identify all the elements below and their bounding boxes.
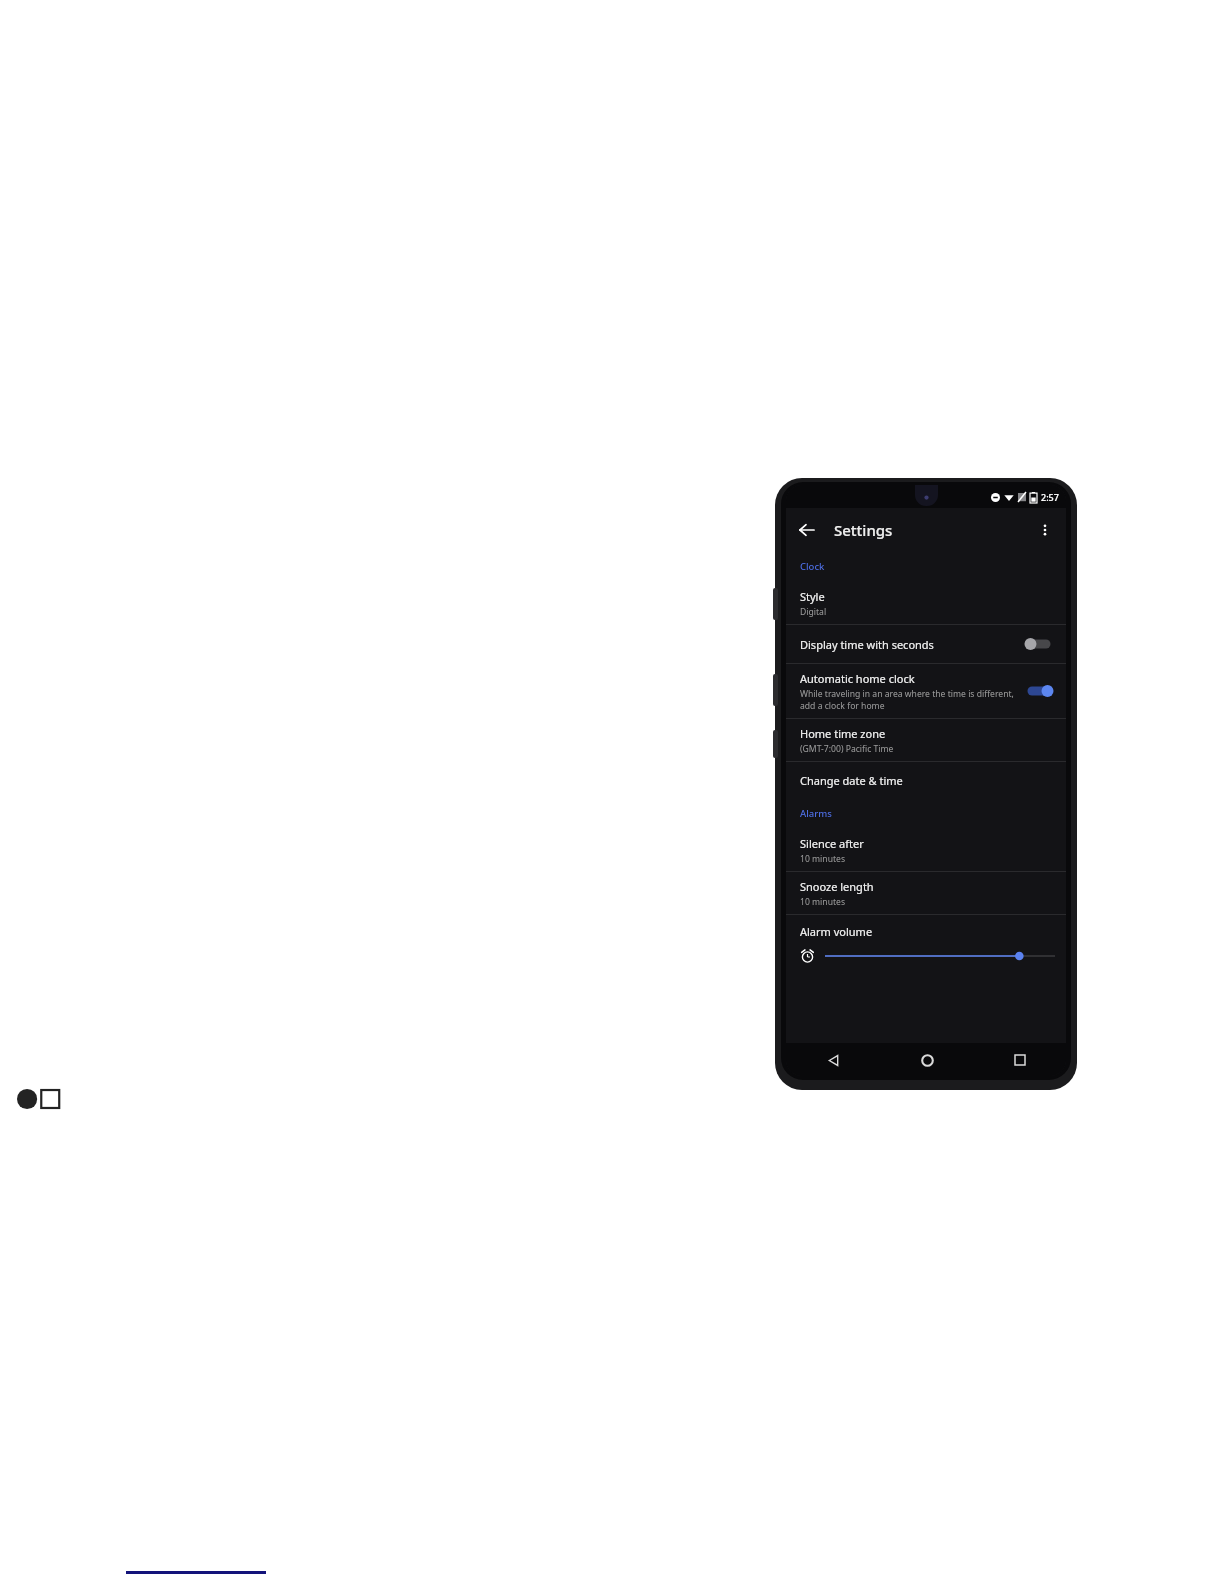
- staticText: Home time zone: [800, 726, 886, 741]
- staticText: (GMT-7:00) Pacific Time: [800, 743, 894, 755]
- button[interactable]: More options: [1029, 514, 1061, 546]
- button[interactable]: Home: [912, 1045, 942, 1075]
- button[interactable]: Disabled: [1023, 632, 1055, 656]
- staticText: Change date & time: [800, 773, 903, 788]
- staticText: Digital: [800, 606, 827, 618]
- staticText: Display time with seconds: [800, 637, 934, 652]
- button[interactable]: Home time zone: [786, 719, 1066, 761]
- staticText: Automatic home clock: [800, 671, 915, 686]
- button[interactable]: Alarm volume: [786, 915, 1066, 973]
- staticText: 10 minutes: [800, 896, 846, 908]
- button[interactable]: Style: [786, 582, 1066, 624]
- button[interactable]: Snooze length: [786, 872, 1066, 914]
- staticText: Alarm volume: [800, 924, 873, 939]
- staticText: Settings: [834, 520, 893, 540]
- button[interactable]: Alarm volume: [825, 949, 1055, 963]
- button[interactable]: Navigate up: [791, 514, 823, 546]
- button[interactable]: Change date & time: [786, 762, 1066, 798]
- staticText: Alarms: [800, 807, 832, 820]
- staticText: Snooze length: [800, 879, 874, 894]
- staticText: Clock: [800, 560, 825, 573]
- button[interactable]: Recent apps: [1005, 1045, 1035, 1075]
- button[interactable]: Silence after: [786, 829, 1066, 871]
- staticText: Silence after: [800, 836, 864, 851]
- staticText: Style: [800, 589, 825, 604]
- button[interactable]: Back: [818, 1045, 848, 1075]
- button[interactable]: Display time with seconds: [786, 625, 1066, 663]
- staticText: While traveling in an area where the tim…: [800, 688, 1014, 711]
- button[interactable]: Automatic home clock: [786, 664, 1066, 718]
- staticText: 2:57: [1041, 491, 1059, 503]
- button[interactable]: Enabled: [1023, 679, 1055, 703]
- staticText: 10 minutes: [800, 853, 846, 865]
